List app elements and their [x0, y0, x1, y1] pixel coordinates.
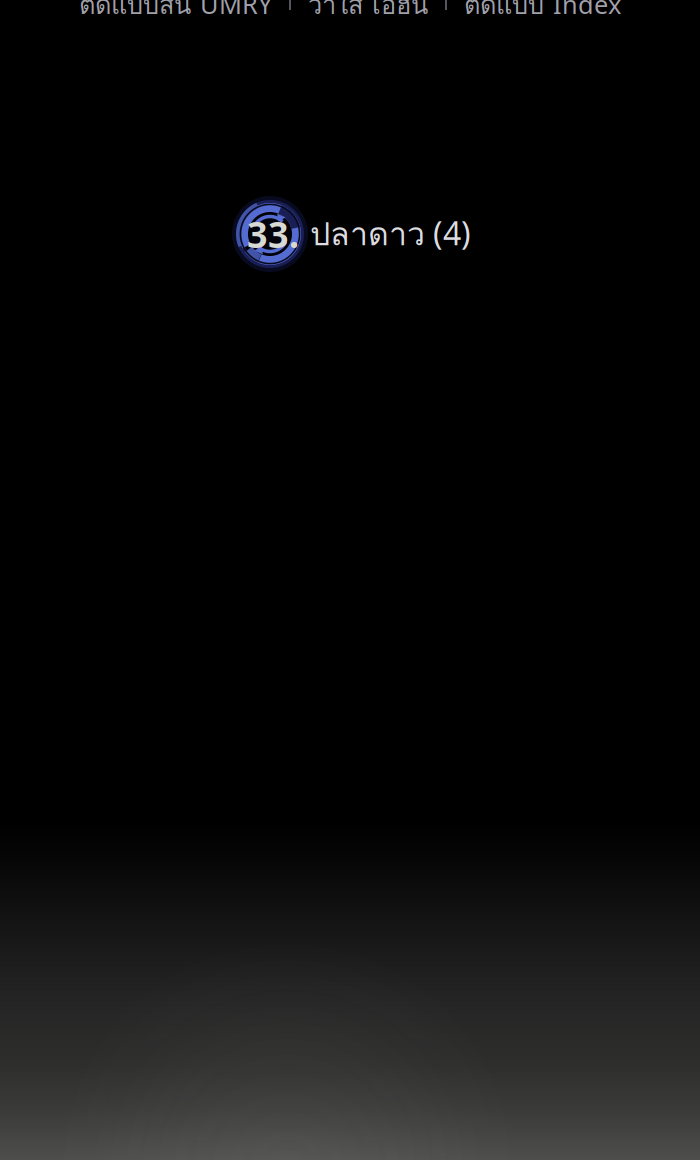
button[interactable]: วาใส่ เอฮัน [308, 0, 428, 25]
staticText: วาใส่ เอฮัน [308, 0, 428, 25]
staticText: ติดแบบสั้น UMRY [79, 0, 272, 25]
button[interactable]: ติดแบบสั้น UMRY [79, 0, 272, 25]
staticText: ติดแบบ Index [464, 0, 621, 25]
staticText: ปลาดาว (4) [310, 209, 471, 259]
button[interactable]: ติดแบบ Index [464, 0, 621, 25]
staticText: 33. [247, 210, 299, 258]
